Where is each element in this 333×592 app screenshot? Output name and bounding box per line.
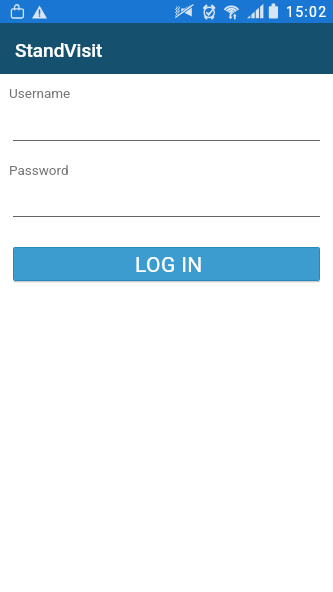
button[interactable]: Password [9,162,319,202]
button[interactable]: LOG IN [14,248,319,280]
staticText: LOG IN [135,253,203,278]
staticText: 15:02 [286,4,328,20]
staticText: Username [9,85,71,101]
staticText: StandVisit [15,39,103,61]
staticText: Password [9,162,69,178]
button[interactable]: Username [9,85,319,125]
